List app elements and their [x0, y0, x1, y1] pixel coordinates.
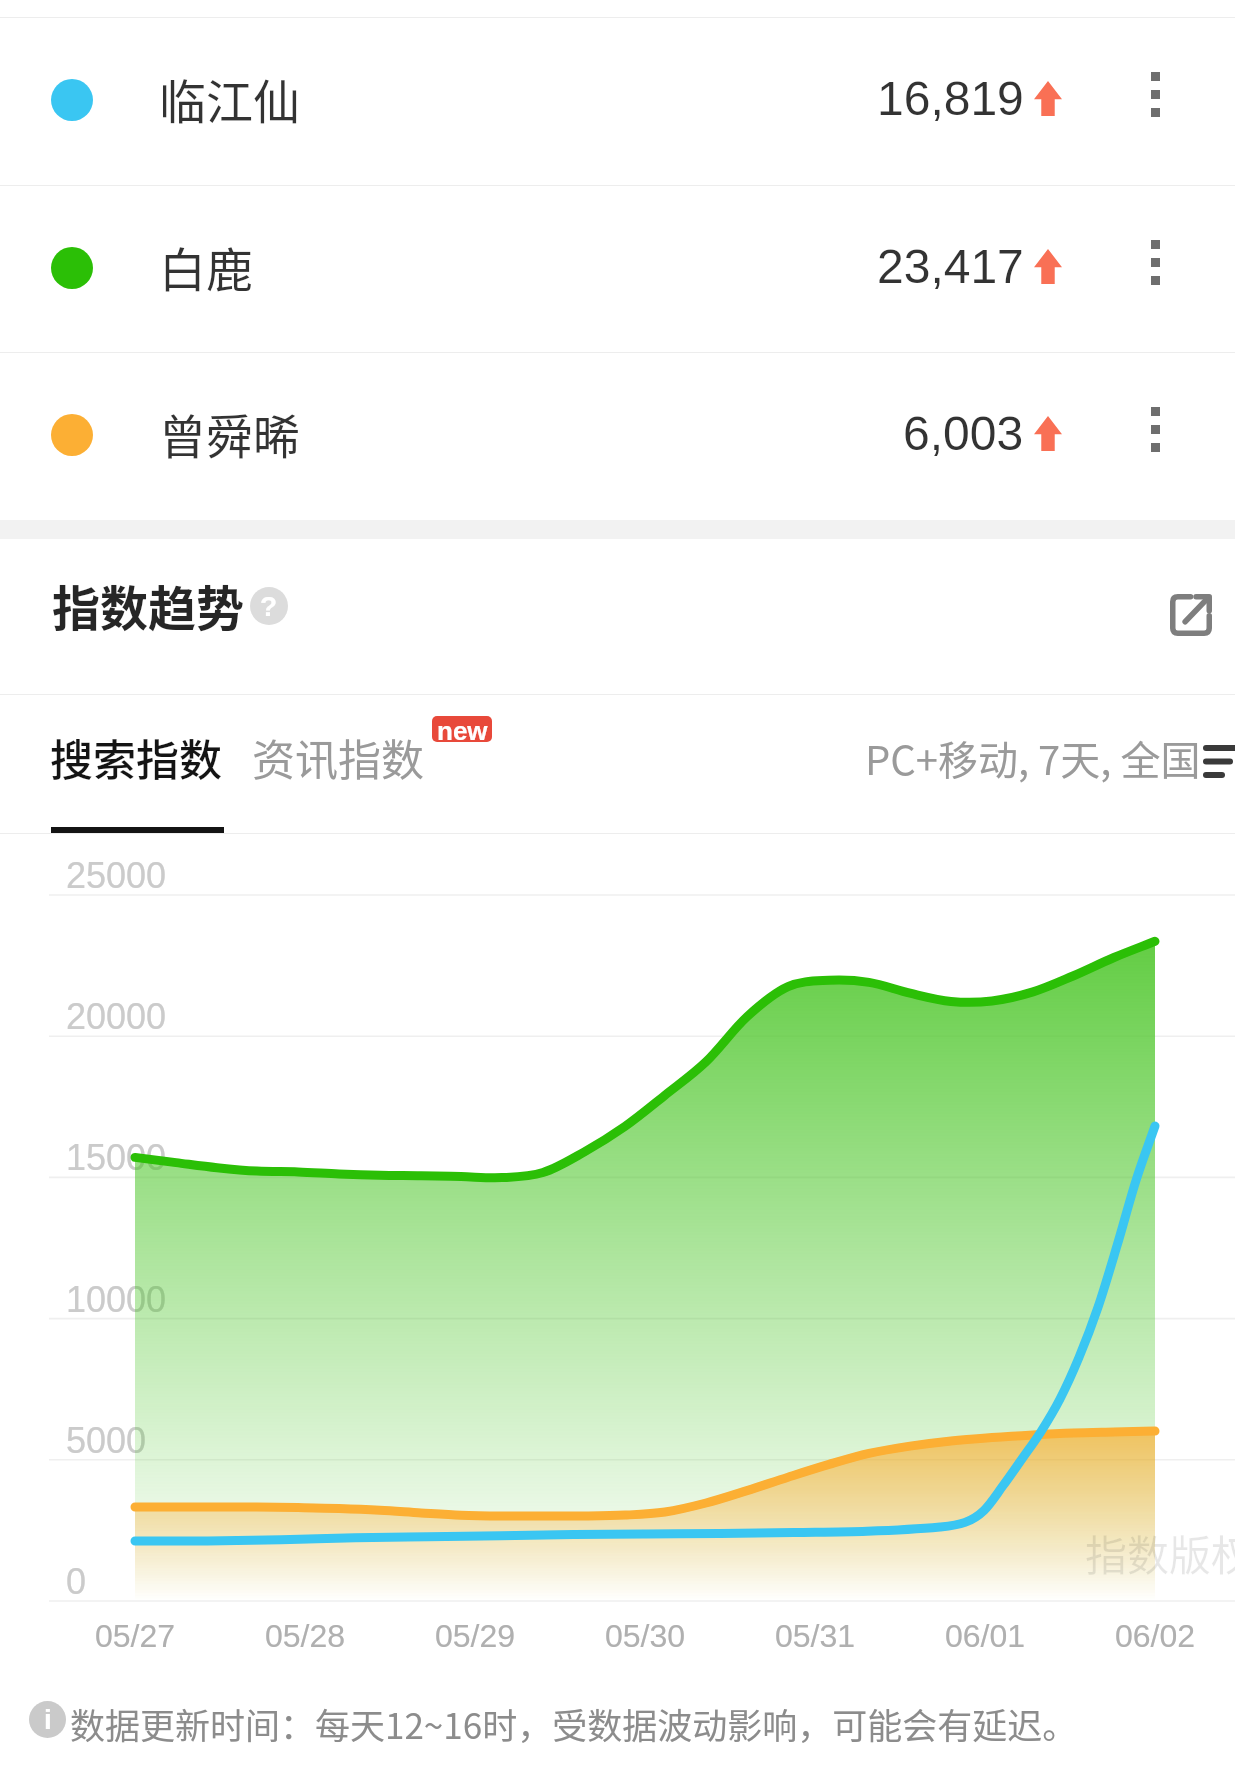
- button[interactable]: 临江仙: [0, 17, 1235, 185]
- staticText: 16,819: [877, 72, 1024, 126]
- staticText: 20000: [66, 996, 167, 1036]
- button[interactable]: 资讯指数: [252, 726, 424, 788]
- staticText: 搜索指数: [50, 726, 222, 788]
- staticText: 05/28: [265, 1618, 346, 1654]
- staticText: 05/31: [775, 1618, 856, 1654]
- staticText: 数据更新时间：每天12~16时，受数据波动影响，可能会有延迟。: [70, 1698, 1078, 1749]
- staticText: 指数版权: [1085, 1522, 1235, 1583]
- staticText: 10000: [66, 1279, 167, 1319]
- staticText: 指数趋势: [52, 570, 245, 640]
- button[interactable]: 搜索指数: [50, 726, 222, 788]
- button[interactable]: More options: [1105, 55, 1205, 145]
- staticText: PC+移动, 7天, 全国: [865, 729, 1201, 787]
- staticText: 5000: [66, 1420, 147, 1460]
- button[interactable]: 曾舜晞: [0, 352, 1235, 520]
- button[interactable]: Help: [250, 587, 288, 625]
- staticText: i: [44, 1704, 52, 1735]
- staticText: ?: [260, 591, 278, 622]
- button[interactable]: Open in new window: [1148, 572, 1234, 658]
- staticText: 曾舜晞: [159, 399, 300, 467]
- button[interactable]: PC+移动, 7天, 全国: [845, 722, 1235, 794]
- staticText: 05/29: [435, 1618, 516, 1654]
- button[interactable]: 指数趋势: [52, 570, 245, 640]
- staticText: new: [437, 716, 488, 742]
- staticText: 05/30: [605, 1618, 686, 1654]
- staticText: 23,417: [877, 240, 1024, 294]
- button[interactable]: 白鹿: [0, 185, 1235, 353]
- staticText: 15000: [66, 1137, 167, 1177]
- staticText: 白鹿: [159, 232, 253, 300]
- staticText: 资讯指数: [252, 726, 424, 788]
- button[interactable]: More options: [1105, 390, 1205, 480]
- staticText: 25000: [66, 855, 167, 895]
- staticText: 6,003: [903, 407, 1024, 461]
- staticText: 06/01: [945, 1618, 1026, 1654]
- staticText: 临江仙: [159, 64, 300, 132]
- staticText: 06/02: [1115, 1618, 1196, 1654]
- button[interactable]: More options: [1105, 223, 1205, 313]
- staticText: 05/27: [95, 1618, 176, 1654]
- staticText: 0: [66, 1561, 87, 1601]
